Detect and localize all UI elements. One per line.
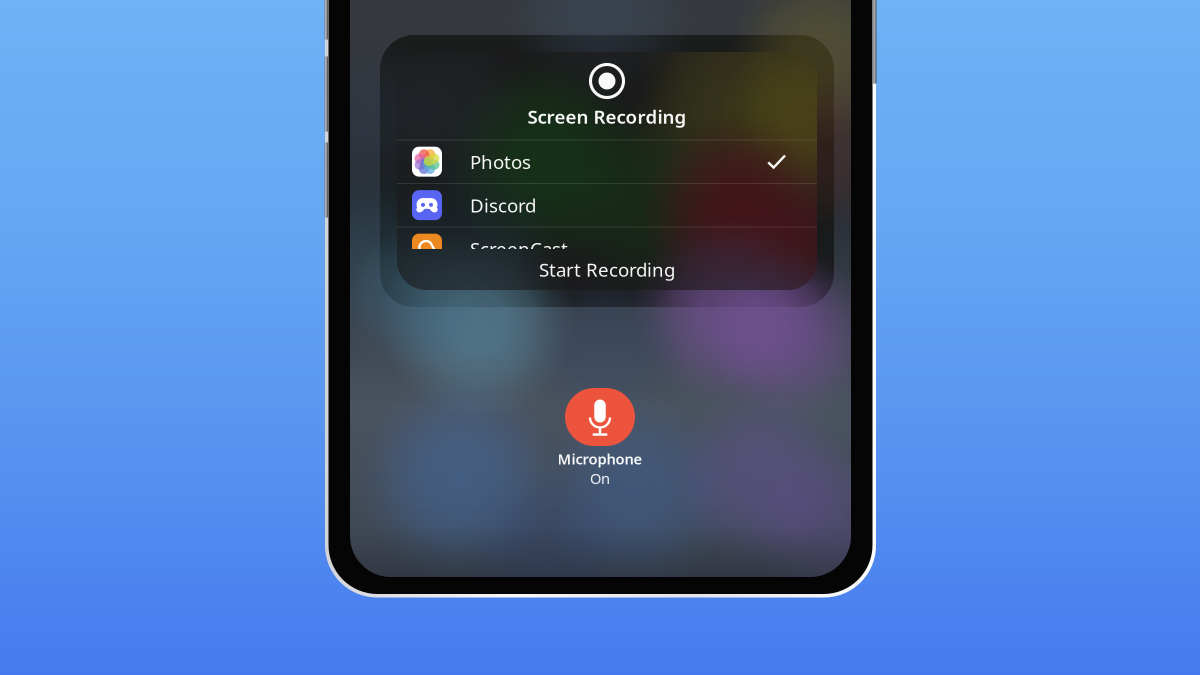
button[interactable]: Photos (397, 140, 817, 183)
staticText: Screen Recording (527, 104, 686, 129)
staticText: Microphone (557, 449, 642, 468)
staticText: On (590, 468, 610, 488)
button[interactable]: Discord (397, 184, 817, 226)
staticText: Start Recording (539, 257, 675, 282)
staticText: Discord (470, 193, 536, 218)
button[interactable]: Microphone On (565, 388, 635, 446)
button[interactable]: Start Recording (397, 249, 817, 290)
staticText: Photos (470, 149, 531, 174)
staticText: ScreenCast (470, 236, 568, 261)
button[interactable]: ScreenCast (397, 227, 817, 270)
